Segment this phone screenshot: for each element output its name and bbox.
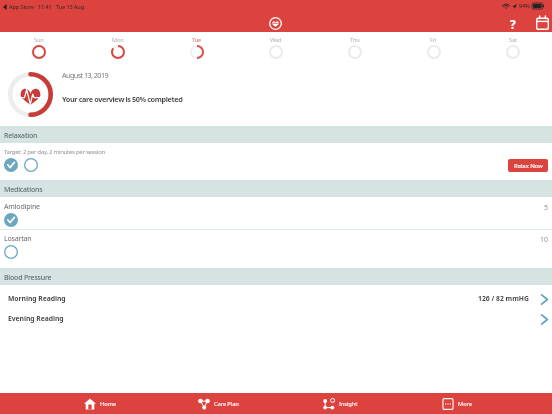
staticText: 126 / 82 mmHG xyxy=(478,294,529,303)
button[interactable]: Tue xyxy=(157,36,236,59)
button[interactable]: Care Plan xyxy=(190,393,249,414)
staticText: Wed xyxy=(270,36,282,44)
staticText: Sun xyxy=(34,36,44,44)
staticText: August 13, 2019 xyxy=(62,70,109,80)
button[interactable]: Not completed xyxy=(24,158,38,172)
staticText: 10 xyxy=(540,234,549,244)
button[interactable]: Thu xyxy=(315,36,394,59)
button[interactable]: App logo xyxy=(269,17,282,30)
staticText: 11:41 xyxy=(38,3,52,11)
staticText: Tue 13 Aug xyxy=(56,3,85,11)
staticText: Fri xyxy=(430,36,437,44)
staticText: Thu xyxy=(350,36,360,44)
button[interactable]: August 13, 2019 xyxy=(0,63,552,125)
staticText: Evening Reading xyxy=(8,314,64,323)
button[interactable]: Home xyxy=(76,393,127,414)
staticText: 5 xyxy=(544,202,549,212)
button[interactable]: Amlodipine xyxy=(0,199,552,229)
button[interactable]: Mon xyxy=(78,36,157,59)
staticText: Losartan xyxy=(4,233,32,243)
button[interactable]: Help xyxy=(505,16,520,31)
staticText: App Store xyxy=(9,3,34,11)
staticText: ? xyxy=(510,16,516,31)
staticText: 94% xyxy=(519,2,530,10)
staticText: Target: 2 per day, 2 minutes per session xyxy=(4,148,105,156)
staticText: Relaxation xyxy=(4,131,38,141)
button[interactable]: Completed xyxy=(4,213,18,227)
staticText: Sat xyxy=(509,36,517,44)
staticText: Mon xyxy=(112,36,124,44)
staticText: Care Plan xyxy=(214,400,239,408)
button[interactable]: Evening Reading xyxy=(0,311,552,330)
button[interactable]: Losartan xyxy=(0,231,552,261)
button[interactable]: Sat xyxy=(473,36,552,59)
button[interactable]: Completed xyxy=(4,158,18,172)
button[interactable]: Not completed xyxy=(4,245,18,259)
button[interactable]: Relax Now xyxy=(508,159,548,172)
button[interactable]: Sun xyxy=(0,36,78,59)
staticText: Insight xyxy=(339,400,358,408)
button[interactable]: More xyxy=(434,393,482,414)
button[interactable]: Insight xyxy=(315,393,368,414)
button[interactable]: Morning Reading xyxy=(0,291,552,310)
staticText: Home xyxy=(100,400,117,408)
button[interactable]: Fri xyxy=(394,36,473,59)
button[interactable]: Wed xyxy=(236,36,315,59)
staticText: Relax Now xyxy=(514,162,543,170)
staticText: More xyxy=(458,400,472,408)
staticText: Your care overview is 50% completed xyxy=(62,94,183,104)
staticText: Blood Pressure xyxy=(4,273,52,283)
staticText: Amlodipine xyxy=(4,201,40,211)
staticText: Medications xyxy=(4,185,43,195)
staticText: Tue xyxy=(192,36,202,44)
staticText: Morning Reading xyxy=(8,294,66,303)
button[interactable]: Calendar xyxy=(534,15,550,31)
